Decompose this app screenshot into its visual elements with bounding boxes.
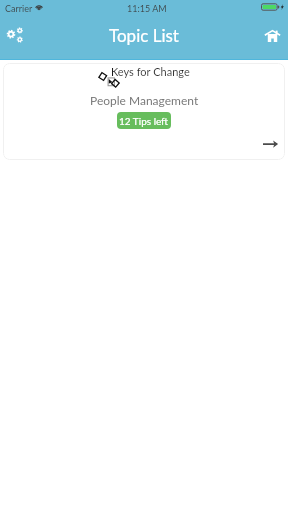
button[interactable]: 12 Tips left [117,112,171,129]
staticText: People Management [90,93,199,107]
staticText: Keys for Change [111,65,190,78]
button[interactable]: Open topic [263,139,280,149]
button[interactable]: Home [254,20,288,60]
staticText: 11:15 AM [127,3,167,14]
staticText: Topic List [109,25,179,45]
staticText: Carrier [5,3,33,14]
button[interactable]: Keys for Change [3,63,285,160]
staticText: 12 Tips left [119,115,169,127]
button[interactable]: Settings [0,20,34,60]
